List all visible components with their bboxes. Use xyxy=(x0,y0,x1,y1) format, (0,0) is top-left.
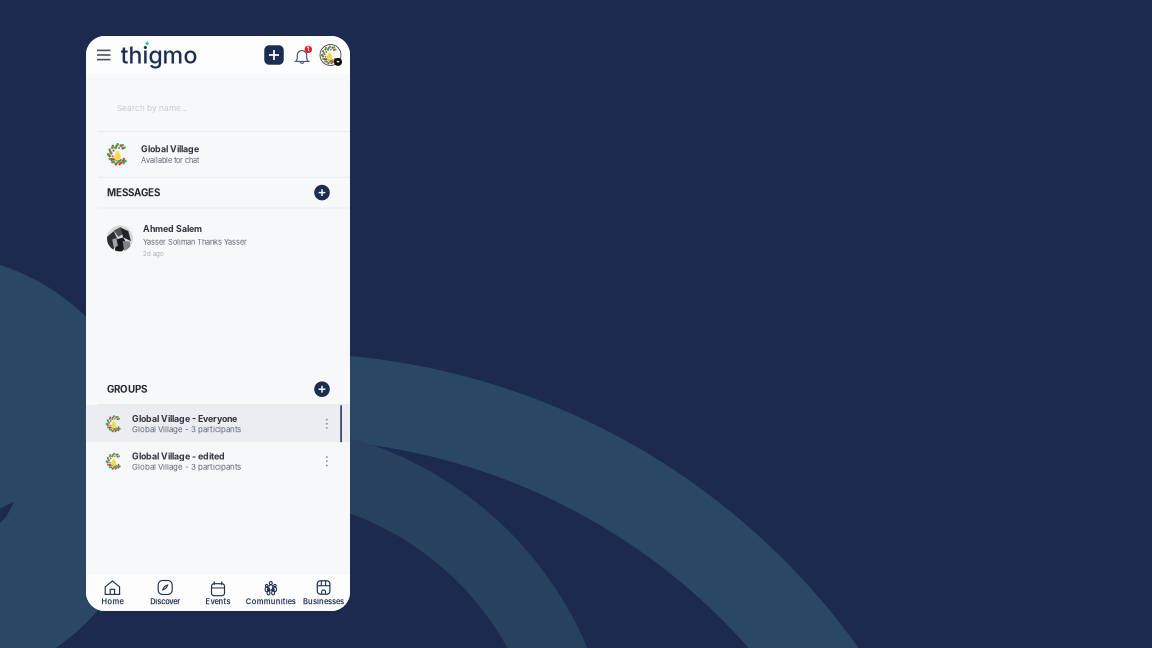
button[interactable]: Global Village - Everyone xyxy=(86,405,350,442)
button[interactable]: Menu xyxy=(92,43,115,67)
staticText: Global Village - 3 participants xyxy=(132,425,241,434)
staticText: MESSAGES xyxy=(107,187,160,198)
staticText: Discover xyxy=(150,597,180,606)
staticText: Global Village xyxy=(141,144,199,154)
staticText: 1 xyxy=(307,46,310,53)
button[interactable]: Add groups xyxy=(312,379,332,399)
button[interactable]: Home xyxy=(86,575,139,611)
staticText: Home xyxy=(101,597,123,606)
button[interactable]: Create xyxy=(263,44,285,66)
button[interactable]: Add messages xyxy=(312,183,332,203)
staticText: Ahmed Salem xyxy=(143,223,202,234)
staticText: Yasser Soliman Thanks Yasser xyxy=(143,238,247,246)
staticText: 2d ago xyxy=(143,250,164,257)
button[interactable]: Events xyxy=(192,575,244,611)
staticText: thigmo xyxy=(120,41,197,69)
button[interactable]: Global Village - edited xyxy=(86,442,350,480)
staticText: Global Village - Everyone xyxy=(132,413,237,424)
staticText: GROUPS xyxy=(107,383,147,395)
staticText: Businesses xyxy=(303,597,344,606)
button[interactable]: Global Village xyxy=(86,132,350,177)
staticText: Events xyxy=(205,597,230,606)
staticText: Communities xyxy=(246,597,296,606)
button[interactable]: Businesses xyxy=(297,575,350,611)
staticText: Global Village - edited xyxy=(132,451,225,461)
button[interactable]: Communities xyxy=(244,575,297,611)
staticText: Available for chat xyxy=(141,156,199,165)
button[interactable]: Profile xyxy=(320,44,341,65)
button[interactable]: Discover xyxy=(139,575,192,611)
button[interactable]: Notifications xyxy=(293,44,313,66)
staticText: Global Village - 3 participants xyxy=(132,462,241,472)
staticText: Search by name... xyxy=(117,103,187,113)
button[interactable]: Ahmed Salem xyxy=(86,208,350,260)
